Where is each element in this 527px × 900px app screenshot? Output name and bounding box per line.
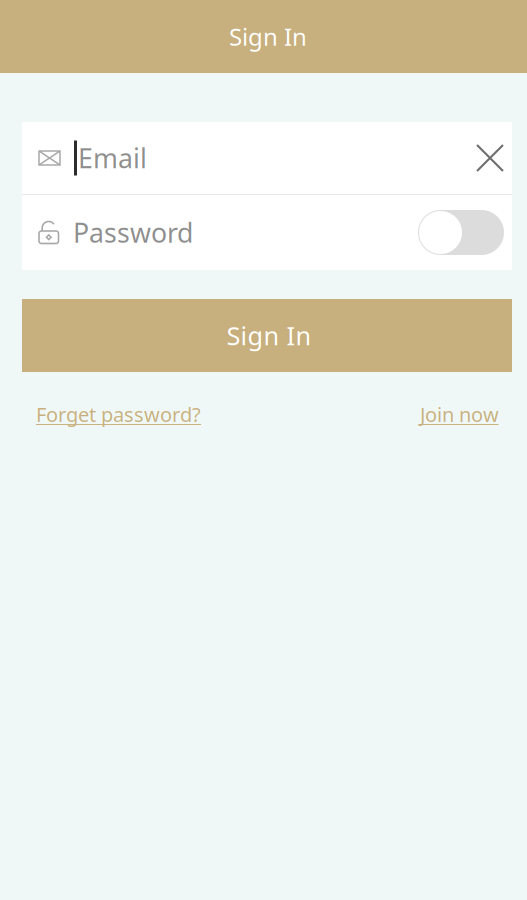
staticText: Sign In	[229, 21, 307, 52]
staticText: Join now	[420, 401, 499, 428]
staticText: Password	[73, 215, 193, 250]
staticText: Email	[78, 140, 147, 176]
button[interactable]: Join now	[420, 395, 499, 434]
button[interactable]: Forget password?	[36, 395, 201, 434]
button[interactable]: Show password	[408, 206, 504, 259]
staticText: Sign In	[226, 319, 311, 352]
button[interactable]: Sign In	[22, 299, 512, 372]
staticText: Forget password?	[36, 401, 201, 428]
button[interactable]: Clear email	[466, 136, 504, 180]
